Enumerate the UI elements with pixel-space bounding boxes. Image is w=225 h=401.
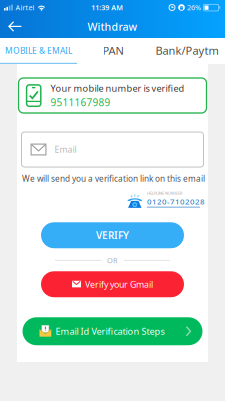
staticText: VERIFY: [96, 228, 129, 242]
staticText: 0120-7102028: [147, 196, 205, 207]
button[interactable]: Email Id Verification Steps: [22, 317, 202, 345]
staticText: MOBILE & EMAIL: [5, 45, 72, 56]
button[interactable]: Back: [0, 15, 30, 37]
button[interactable]: Verify your Gmail: [41, 271, 184, 297]
staticText: We will send you a verification link on …: [22, 173, 205, 184]
staticText: HELPLINE NUMBER: [147, 191, 182, 196]
staticText: Airtel: [15, 3, 34, 12]
staticText: Withdraw: [87, 19, 137, 34]
staticText: Email Id Verification Steps: [55, 325, 164, 337]
button[interactable]: MOBILE & EMAIL: [0, 45, 77, 56]
staticText: Bank/Paytm: [155, 43, 218, 58]
staticText: OR: [107, 255, 118, 265]
staticText: Email: [54, 144, 76, 155]
button[interactable]: Bank/Paytm: [149, 43, 225, 58]
staticText: PAN: [102, 43, 123, 58]
button[interactable]: Call helpline 0120-7102028: [127, 191, 205, 208]
staticText: 9511167989: [50, 95, 110, 109]
staticText: 11:39 AM: [91, 3, 123, 12]
button[interactable]: VERIFY: [41, 222, 184, 248]
staticText: Your mobile number is verified: [50, 82, 184, 94]
button[interactable]: PAN: [77, 43, 149, 58]
staticText: Verify your Gmail: [85, 278, 153, 290]
staticText: 26%: [187, 3, 201, 12]
